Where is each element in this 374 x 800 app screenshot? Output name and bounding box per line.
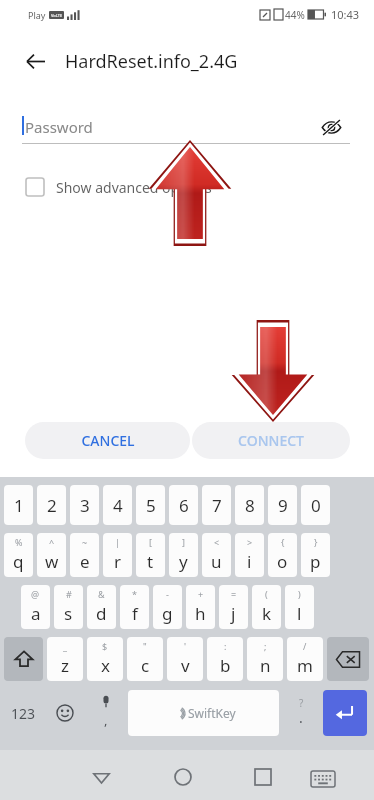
staticText: x (101, 654, 110, 677)
button[interactable]: Hide keyboard (308, 764, 338, 794)
staticText: w (45, 550, 59, 573)
button[interactable]: 7 (202, 485, 231, 525)
staticText: + (198, 588, 204, 600)
button[interactable]: ; (247, 637, 283, 681)
button[interactable]: / (287, 637, 323, 681)
button[interactable]: * (120, 585, 149, 629)
staticText: q (13, 550, 24, 573)
staticText: < (214, 536, 220, 548)
button[interactable]: < (202, 533, 231, 577)
button[interactable]: 123 (4, 689, 42, 737)
staticText: y (179, 550, 188, 573)
staticText: 4 (113, 494, 123, 517)
staticText: . (299, 708, 303, 727)
staticText: ] (182, 536, 185, 548)
button[interactable]: # (54, 585, 83, 629)
staticText: % (15, 536, 23, 548)
staticText: v (181, 654, 190, 677)
button[interactable]: ( (252, 585, 281, 629)
button[interactable]: | (103, 533, 132, 577)
staticText: 5 (146, 494, 156, 517)
staticText: | (115, 536, 120, 548)
button[interactable]: ~ (70, 533, 99, 577)
staticText: } (314, 536, 318, 548)
button[interactable]: Space (128, 690, 279, 736)
button[interactable]: 8 (235, 485, 264, 525)
button[interactable]: CANCEL (25, 422, 190, 459)
staticText: ~ (82, 536, 88, 548)
button[interactable]: = (219, 585, 248, 629)
staticText: f (132, 602, 138, 625)
button[interactable]: Emoji (46, 689, 84, 737)
button[interactable]: Home (170, 764, 196, 790)
button[interactable]: : (207, 637, 243, 681)
staticText: , (104, 711, 108, 729)
staticText: i (247, 550, 252, 573)
staticText: e (80, 550, 90, 573)
staticText: l (297, 602, 302, 625)
button[interactable]: [ (136, 533, 165, 577)
staticText: a (31, 602, 41, 625)
staticText: CONNECT (238, 431, 304, 450)
staticText: 0 (311, 494, 321, 517)
button[interactable]: Backspace (327, 637, 369, 681)
button[interactable]: ] (169, 533, 198, 577)
button[interactable]: _ (47, 637, 83, 681)
staticText: 123 (11, 704, 36, 723)
button[interactable]: 9 (268, 485, 297, 525)
button[interactable]: ? (283, 689, 319, 737)
button[interactable]: Voice input (88, 689, 124, 737)
button[interactable]: & (87, 585, 116, 629)
button[interactable]: Show advanced options (26, 172, 212, 202)
staticText: m (297, 654, 313, 677)
button[interactable]: 2 (37, 485, 66, 525)
staticText: { (281, 536, 285, 548)
button[interactable]: $ (87, 637, 123, 681)
staticText: ^ (49, 536, 55, 548)
button[interactable]: 6 (169, 485, 198, 525)
staticText: 44% (285, 8, 305, 22)
button[interactable]: Show password (316, 112, 346, 142)
button[interactable]: 4 (103, 485, 132, 525)
button[interactable]: Enter (323, 690, 367, 736)
staticText: g (162, 602, 173, 625)
staticText: 3 (80, 494, 90, 517)
staticText: j (231, 602, 236, 625)
button[interactable]: ^ (37, 533, 66, 577)
staticText: r (114, 550, 122, 573)
staticText: : (224, 640, 227, 652)
button[interactable]: 3 (70, 485, 99, 525)
staticText: ' (184, 640, 187, 652)
staticText: u (211, 550, 222, 573)
button[interactable]: Back (20, 46, 50, 76)
button[interactable]: - (153, 585, 182, 629)
button[interactable]: Shift (4, 637, 43, 681)
button[interactable]: { (268, 533, 297, 577)
staticText: HARDRESET (8, 688, 273, 751)
staticText: p (310, 550, 321, 573)
button[interactable]: % (4, 533, 33, 577)
button[interactable]: + (186, 585, 215, 629)
staticText: z (61, 654, 69, 677)
button[interactable]: ' (167, 637, 203, 681)
staticText: & (98, 588, 105, 600)
staticText: # (66, 588, 72, 600)
button[interactable]: Recent apps (250, 764, 276, 790)
staticText: " (143, 640, 147, 652)
staticText: INFO (292, 748, 343, 775)
button[interactable]: 0 (301, 485, 330, 525)
staticText: b (220, 654, 231, 677)
button[interactable]: } (301, 533, 330, 577)
staticText: @ (31, 588, 40, 600)
button[interactable]: Back (88, 764, 114, 790)
button[interactable]: 5 (136, 485, 165, 525)
button[interactable]: ) (285, 585, 314, 629)
button[interactable]: " (127, 637, 163, 681)
button[interactable]: > (235, 533, 264, 577)
button[interactable]: CONNECT (192, 422, 350, 459)
staticText: 10:43 (331, 7, 360, 22)
button[interactable]: 1 (4, 485, 33, 525)
staticText: ) (298, 588, 301, 600)
button[interactable]: @ (21, 585, 50, 629)
staticText: HardReset.info_2.4G (65, 49, 238, 74)
